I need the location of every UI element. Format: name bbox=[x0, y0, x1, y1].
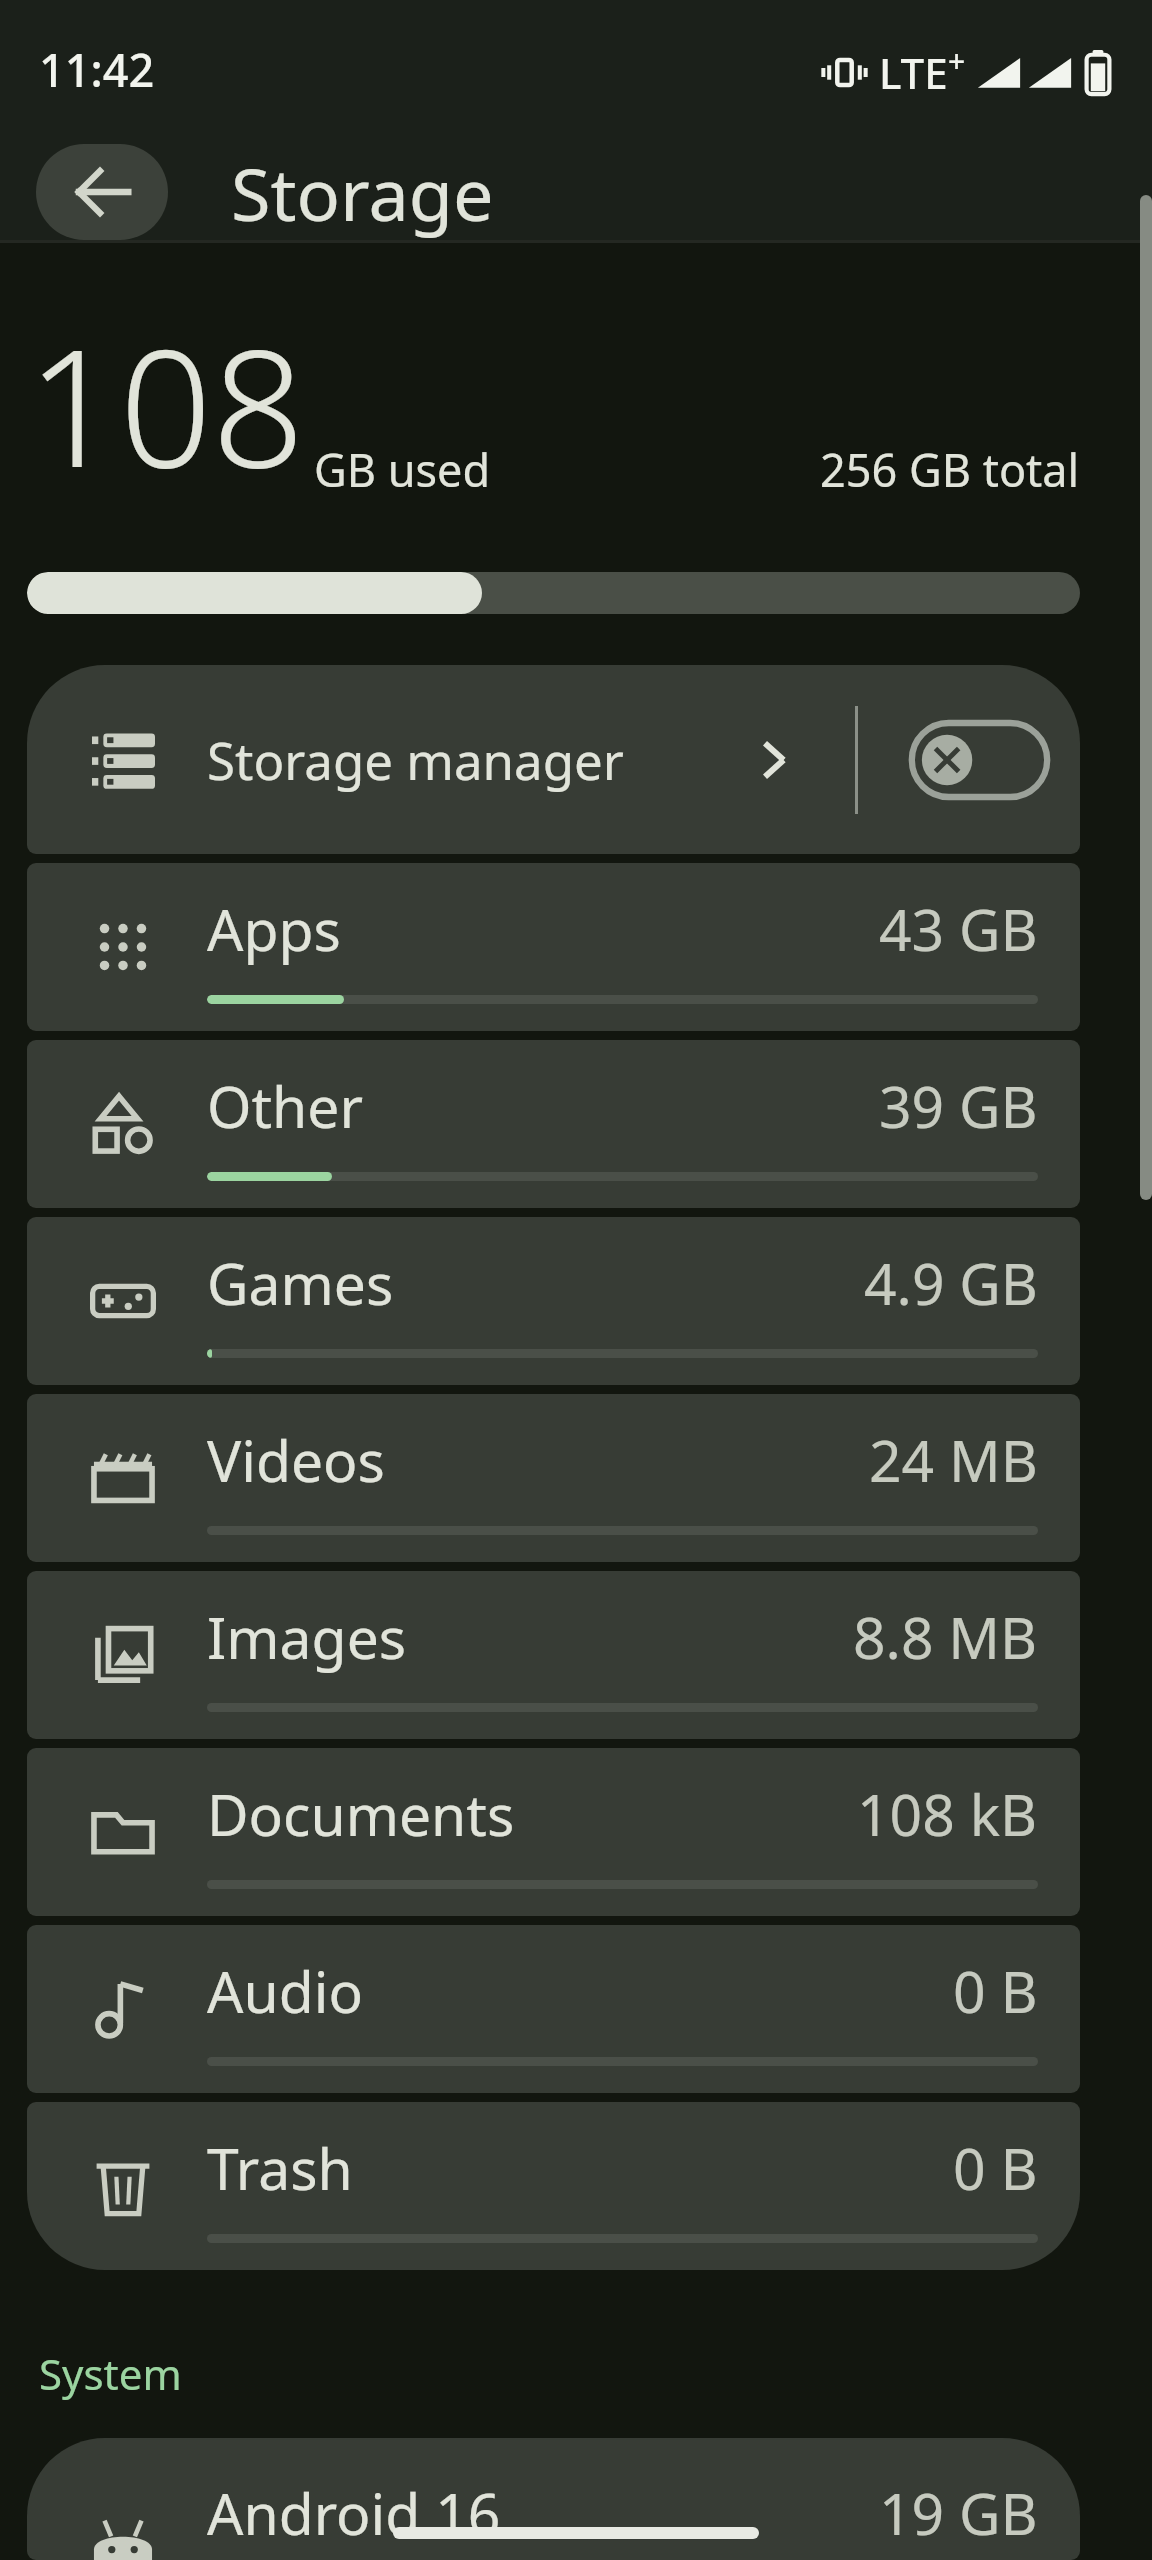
staticText: 256 GB total bbox=[820, 439, 1080, 500]
staticText: Documents bbox=[207, 1775, 515, 1853]
staticText: Trash bbox=[207, 2129, 353, 2207]
staticText: GB used bbox=[314, 439, 491, 500]
button[interactable]: Images bbox=[27, 1571, 1080, 1739]
staticText: Other bbox=[207, 1067, 364, 1145]
staticText: 19 GB bbox=[879, 2474, 1038, 2552]
staticText: 8.8 MB bbox=[853, 1598, 1038, 1676]
staticText: Images bbox=[207, 1598, 407, 1676]
staticText: Videos bbox=[207, 1421, 385, 1499]
staticText: System bbox=[39, 2345, 182, 2402]
button[interactable]: Storage manager toggle bbox=[909, 718, 1050, 802]
staticText: Android 16 bbox=[207, 2474, 501, 2552]
button[interactable]: Videos bbox=[27, 1394, 1080, 1562]
staticText: Storage manager bbox=[207, 725, 624, 794]
staticText: Games bbox=[207, 1244, 394, 1322]
staticText: 108 kB bbox=[857, 1775, 1038, 1853]
button[interactable]: Audio bbox=[27, 1925, 1080, 2093]
staticText: Apps bbox=[207, 890, 341, 968]
staticText: 11:42 bbox=[39, 39, 155, 100]
staticText: 39 GB bbox=[879, 1067, 1038, 1145]
button[interactable]: Android 16 bbox=[27, 2438, 1080, 2560]
button[interactable]: Other bbox=[27, 1040, 1080, 1208]
staticText: Audio bbox=[207, 1952, 363, 2030]
staticText: 0 B bbox=[953, 1952, 1038, 2030]
button[interactable]: Trash bbox=[27, 2102, 1080, 2270]
button[interactable]: Documents bbox=[27, 1748, 1080, 1916]
staticText: 108 bbox=[27, 294, 305, 515]
button[interactable]: Storage manager bbox=[27, 665, 1080, 854]
staticText: LTE bbox=[879, 44, 948, 101]
staticText: 0 B bbox=[953, 2129, 1038, 2207]
staticText: 4.9 GB bbox=[864, 1244, 1038, 1322]
button[interactable]: Games bbox=[27, 1217, 1080, 1385]
staticText: 24 MB bbox=[869, 1421, 1038, 1499]
button[interactable]: Back bbox=[36, 144, 168, 240]
button[interactable]: Apps bbox=[27, 863, 1080, 1031]
staticText: Storage bbox=[231, 144, 494, 240]
staticText: + bbox=[948, 40, 966, 81]
staticText: 43 GB bbox=[879, 890, 1038, 968]
